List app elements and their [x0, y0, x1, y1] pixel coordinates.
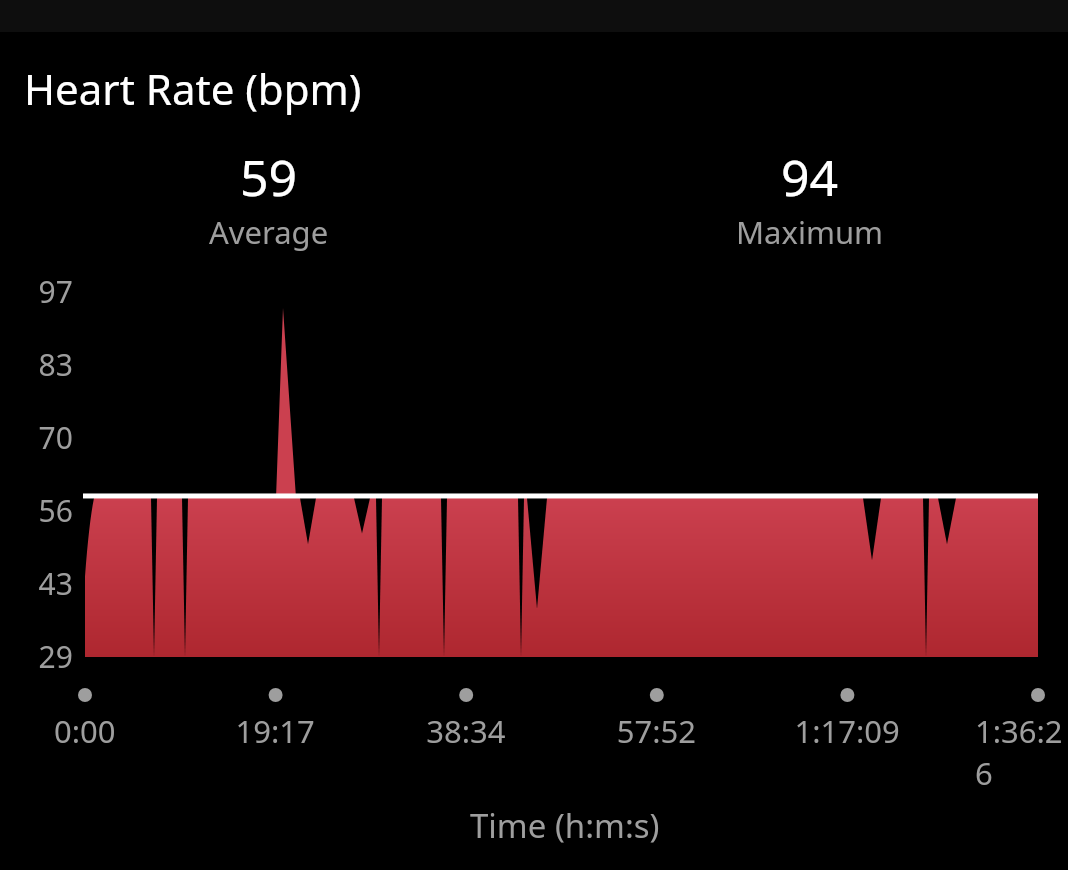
- button[interactable]: Heart rate chart: [0, 0, 1068, 870]
